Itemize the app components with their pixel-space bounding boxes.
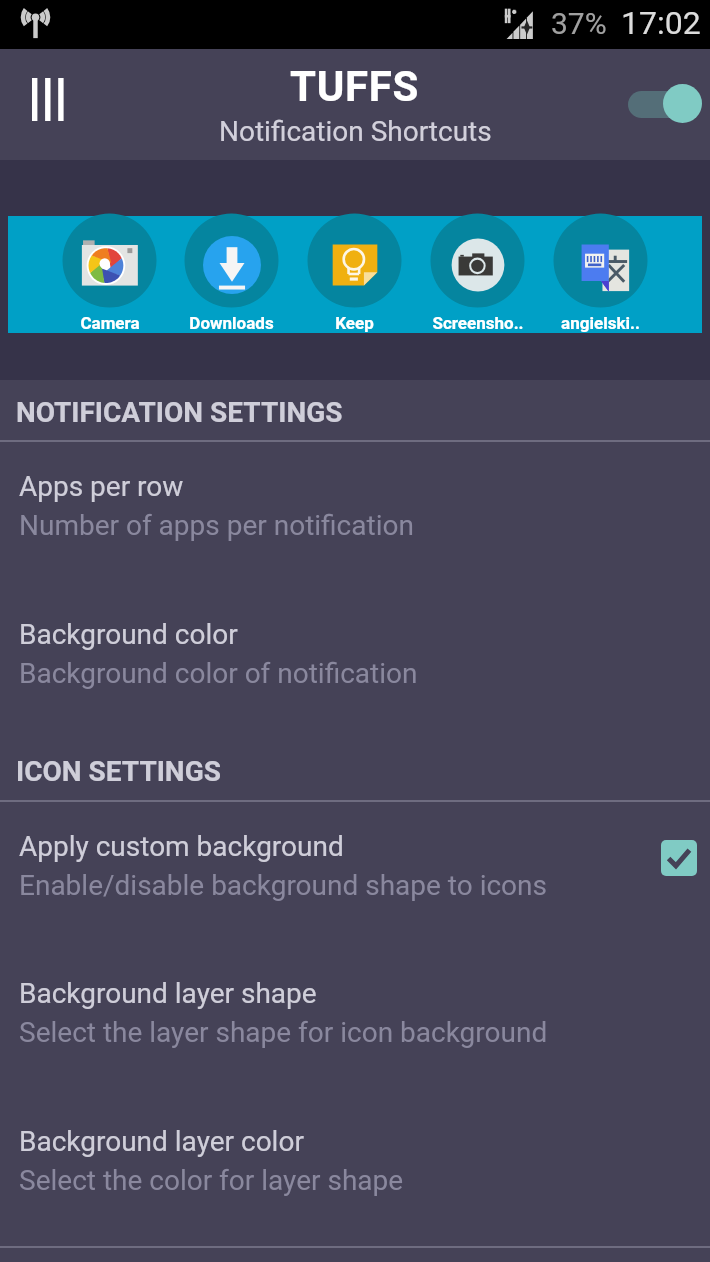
staticText: Keep <box>335 313 374 333</box>
staticText: Background color of notification <box>19 657 418 690</box>
staticText: Apps per row <box>19 470 184 503</box>
staticText: Screensho.. <box>432 313 524 333</box>
staticText: Downloads <box>189 313 274 333</box>
button[interactable]: Background color <box>0 588 710 736</box>
staticText: Apply custom background <box>19 830 344 863</box>
button[interactable]: Apps per row <box>0 440 710 588</box>
staticText: 17:02 <box>621 4 701 42</box>
button[interactable]: Background layer color <box>0 1095 710 1246</box>
staticText: Enable/disable background shape to icons <box>19 869 547 902</box>
staticText: NOTIFICATION SETTINGS <box>16 396 343 429</box>
staticText: Select the layer shape for icon backgrou… <box>19 1016 548 1049</box>
button[interactable]: angielski.. <box>539 216 662 333</box>
staticText: Notification Shortcuts <box>219 115 492 148</box>
staticText: TUFFS <box>290 62 420 111</box>
button[interactable]: Menu <box>0 49 94 160</box>
staticText: Background layer shape <box>19 977 317 1010</box>
staticText: ICON SETTINGS <box>16 755 221 788</box>
staticText: angielski.. <box>561 313 640 333</box>
staticText: Select the color for layer shape <box>19 1164 404 1197</box>
button[interactable]: Background layer shape <box>0 947 710 1095</box>
staticText: Background color <box>19 618 238 651</box>
button[interactable]: Camera <box>48 216 171 333</box>
button[interactable]: Keep <box>293 216 416 333</box>
button[interactable]: Enable shortcuts <box>608 49 710 160</box>
staticText: Background layer color <box>19 1125 304 1158</box>
button[interactable]: Downloads <box>170 216 293 333</box>
button[interactable]: Apply custom background <box>0 800 710 947</box>
staticText: 37% <box>551 6 607 41</box>
button[interactable]: Screensho.. <box>416 216 539 333</box>
staticText: Camera <box>80 313 140 333</box>
staticText: Number of apps per notification <box>19 509 414 542</box>
